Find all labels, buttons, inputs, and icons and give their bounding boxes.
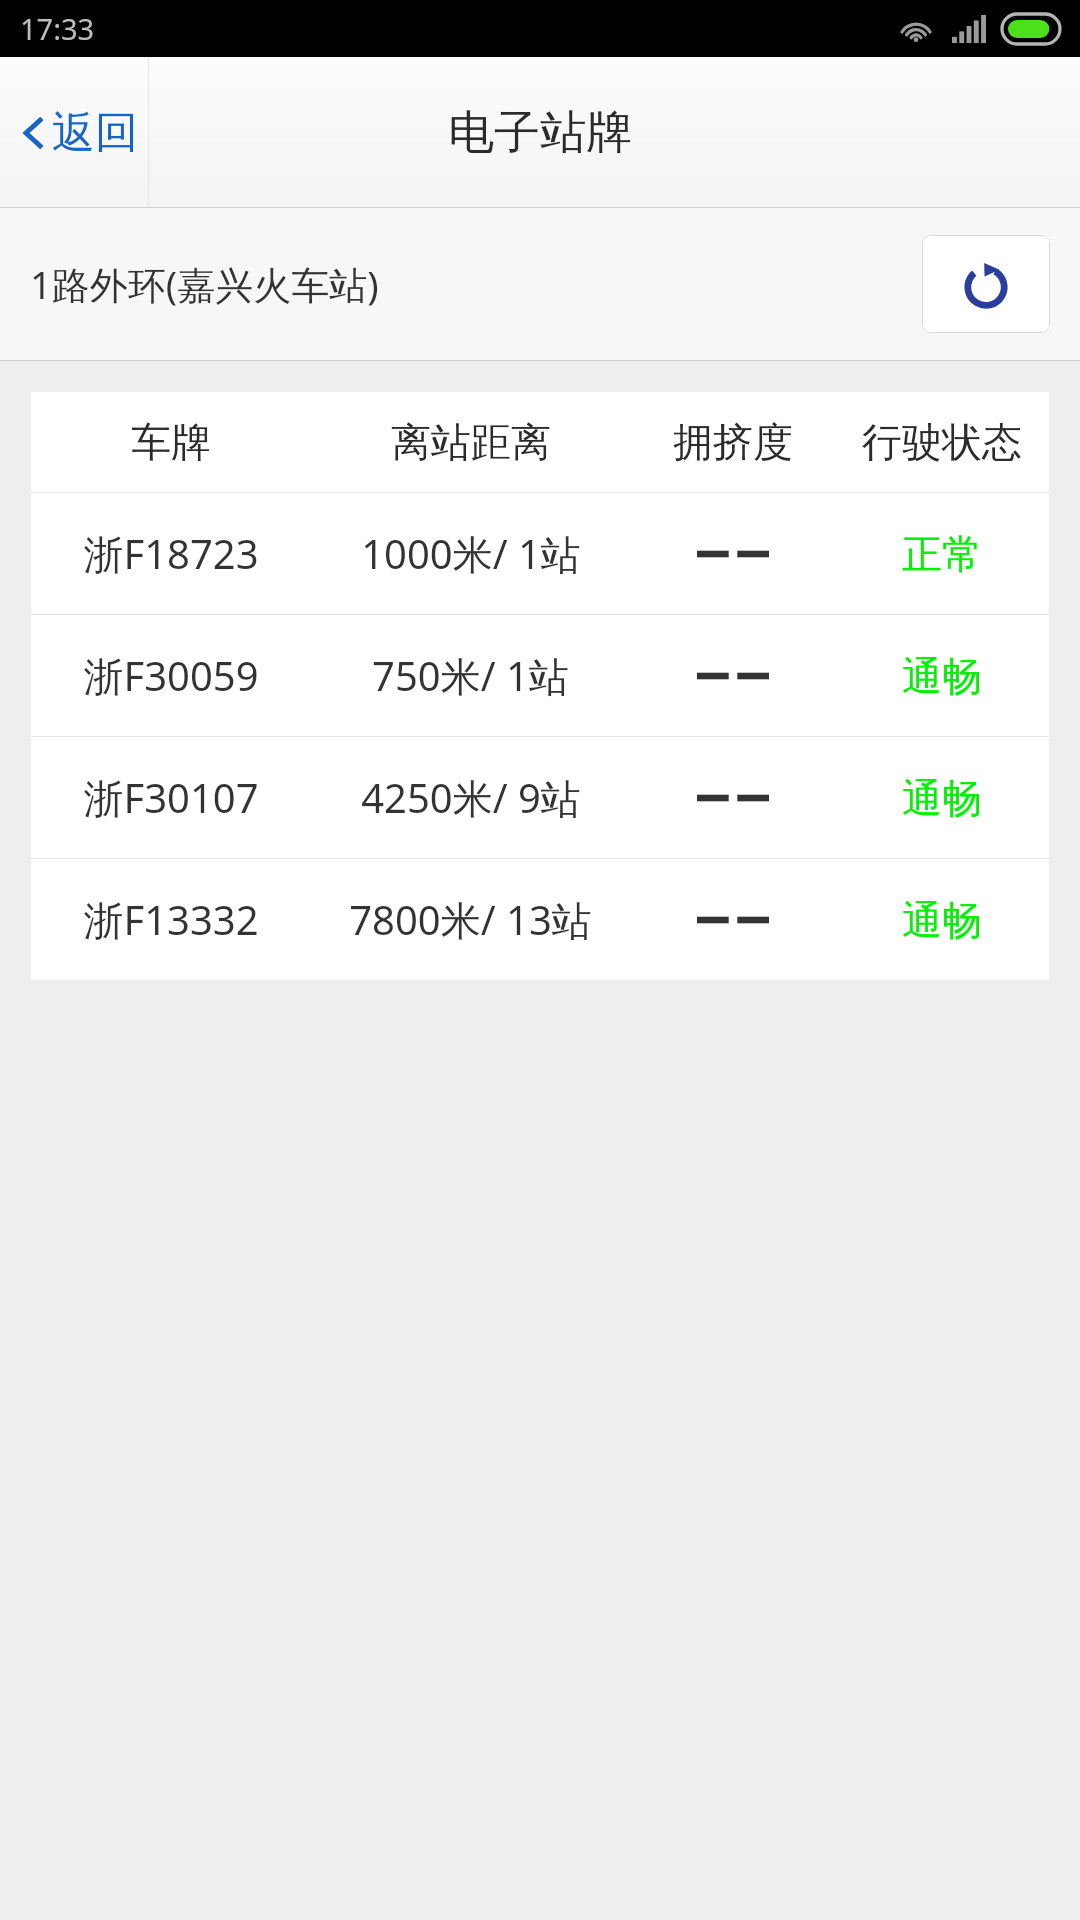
staticText: 车牌 xyxy=(131,417,211,467)
staticText: 1000米/ 1站 xyxy=(361,526,581,581)
staticText: 通畅 xyxy=(902,651,982,701)
staticText: 行驶状态 xyxy=(862,417,1022,467)
staticText: 拥挤度 xyxy=(673,417,793,467)
staticText: 4250米/ 9站 xyxy=(361,770,581,825)
staticText: 浙F30059 xyxy=(83,648,259,703)
button[interactable]: 浙F13332 xyxy=(31,859,1049,980)
button[interactable]: 浙F18723 xyxy=(31,493,1049,614)
staticText: 返回 xyxy=(52,106,138,160)
staticText: 通畅 xyxy=(902,895,982,945)
staticText: 正常 xyxy=(902,529,982,579)
staticText: 7800米/ 13站 xyxy=(349,892,592,947)
button[interactable]: 浙F30059 xyxy=(31,615,1049,736)
staticText: 电子站牌 xyxy=(448,104,632,162)
staticText: 浙F30107 xyxy=(83,770,259,825)
button[interactable]: 刷新 xyxy=(922,235,1050,333)
staticText: 17:33 xyxy=(20,9,95,48)
staticText: 750米/ 1站 xyxy=(372,648,569,703)
staticText: 1路外环(嘉兴火车站) xyxy=(30,258,379,310)
staticText: 通畅 xyxy=(902,773,982,823)
button[interactable]: 浙F30107 xyxy=(31,737,1049,858)
staticText: 浙F18723 xyxy=(83,526,259,581)
staticText: 离站距离 xyxy=(391,417,551,467)
button[interactable]: 返回 xyxy=(0,57,148,208)
staticText: 浙F13332 xyxy=(83,892,259,947)
